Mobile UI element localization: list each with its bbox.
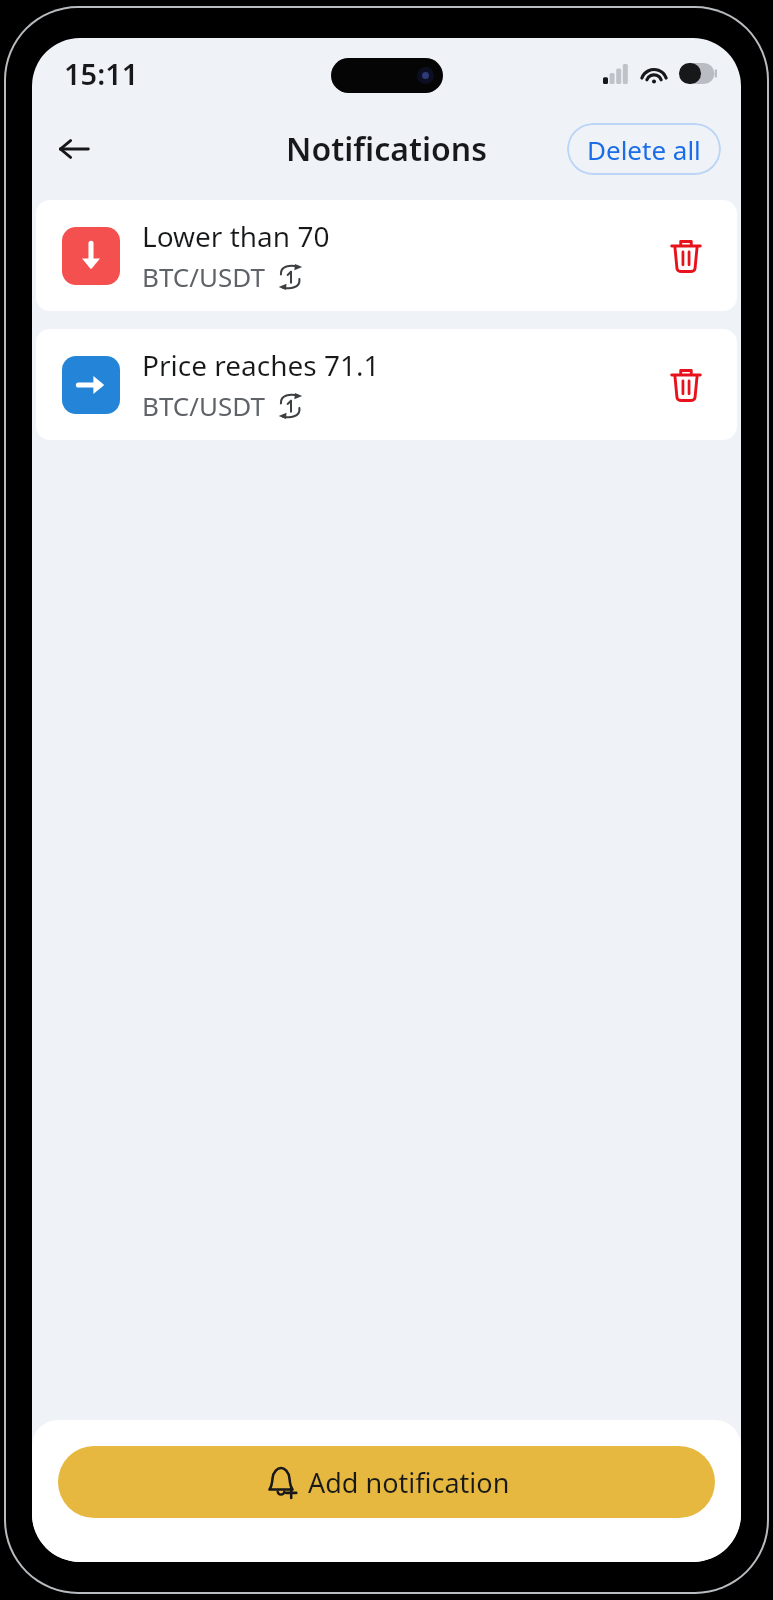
staticText: BTC/USDT bbox=[142, 388, 265, 423]
button[interactable]: Delete notification bbox=[653, 223, 719, 289]
button[interactable]: Delete notification bbox=[653, 352, 719, 418]
button[interactable]: Add notification bbox=[58, 1446, 715, 1518]
button[interactable]: Back bbox=[46, 121, 102, 177]
button[interactable]: Price reaches 71.1 bbox=[36, 329, 737, 440]
staticText: BTC/USDT bbox=[142, 259, 265, 294]
button[interactable]: Delete all bbox=[567, 123, 721, 175]
staticText: Notifications bbox=[286, 127, 487, 171]
staticText: 15:11 bbox=[64, 54, 139, 93]
button[interactable]: Lower than 70 bbox=[36, 200, 737, 311]
staticText: Lower than 70 bbox=[142, 217, 330, 255]
staticText: Price reaches 71.1 bbox=[142, 346, 380, 384]
staticText: Delete all bbox=[587, 132, 701, 167]
staticText: Add notification bbox=[308, 1464, 510, 1501]
